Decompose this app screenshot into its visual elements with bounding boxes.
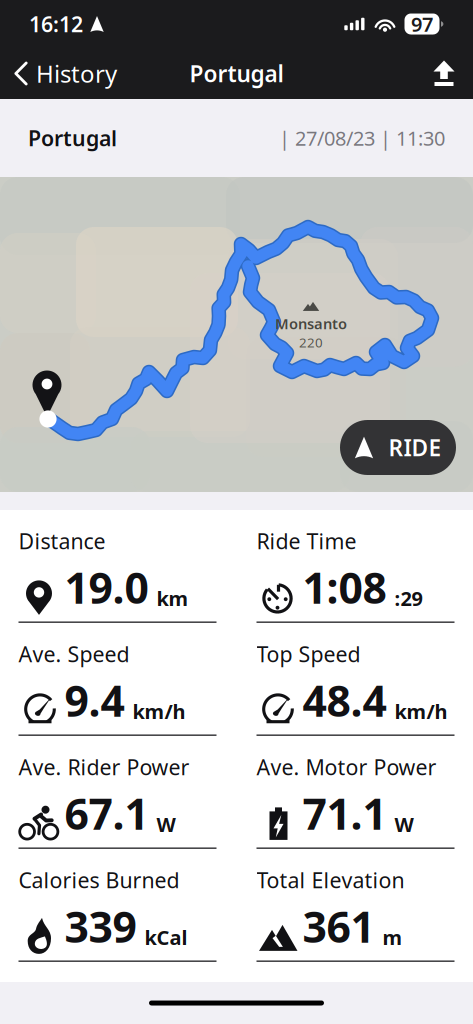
staticText: Portugal <box>189 58 283 88</box>
staticText: km <box>156 585 188 611</box>
staticText: 220 <box>299 333 323 351</box>
staticText: 97 <box>411 11 433 37</box>
staticText: 67.1 <box>64 785 148 841</box>
button[interactable]: RIDE <box>340 420 456 475</box>
staticText: 48.4 <box>302 672 386 728</box>
staticText: 19.0 <box>64 559 148 615</box>
staticText: Total Elevation <box>256 866 404 894</box>
staticText: Top Speed <box>256 640 360 668</box>
staticText: History <box>36 58 117 89</box>
staticText: km/h <box>394 698 447 724</box>
staticText: W <box>394 811 413 837</box>
staticText: 9.4 <box>64 672 124 728</box>
staticText: 339 <box>64 898 136 954</box>
staticText: 1:08 <box>302 559 386 615</box>
staticText: Ave. Motor Power <box>256 753 436 781</box>
staticText: RIDE <box>388 432 441 462</box>
staticText: 16:12 <box>29 10 83 38</box>
staticText: km/h <box>132 698 185 724</box>
staticText: m <box>382 924 402 950</box>
staticText: Distance <box>18 527 105 555</box>
button[interactable]: Share <box>415 48 473 99</box>
button[interactable]: History <box>0 48 131 99</box>
staticText: Calories Burned <box>18 866 179 894</box>
staticText: 361 <box>302 898 374 954</box>
staticText: W <box>156 811 175 837</box>
staticText: :29 <box>394 585 422 611</box>
staticText: Monsanto <box>275 314 347 333</box>
staticText: | 27/08/23 | 11:30 <box>279 125 445 151</box>
staticText: kCal <box>144 924 187 950</box>
staticText: Portugal <box>28 124 117 152</box>
staticText: 71.1 <box>302 785 386 841</box>
staticText: Ave. Rider Power <box>18 753 189 781</box>
staticText: Ave. Speed <box>18 640 129 668</box>
staticText: Ride Time <box>256 527 356 555</box>
